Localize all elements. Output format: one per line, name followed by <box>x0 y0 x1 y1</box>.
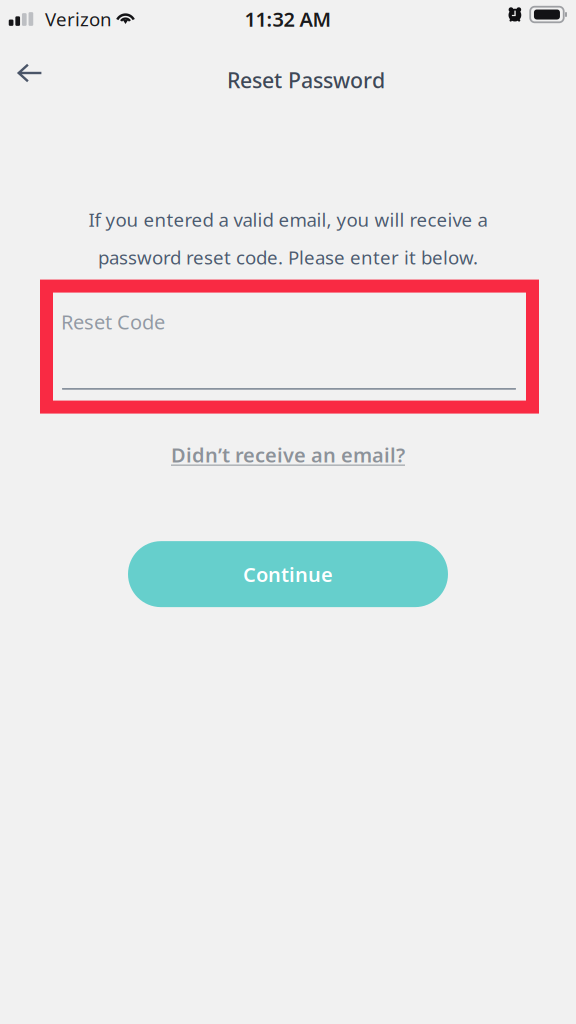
button[interactable]: Reset Code <box>40 280 539 414</box>
staticText: Didn’t receive an email? <box>171 442 405 468</box>
button[interactable]: Didn’t receive an email? <box>161 437 415 473</box>
staticText: Reset Code <box>61 309 165 335</box>
staticText: password reset code. Please enter it bel… <box>98 245 478 270</box>
staticText: If you entered a valid email, you will r… <box>88 207 487 232</box>
staticText: 11:32 AM <box>244 6 331 32</box>
staticText: Reset Password <box>227 66 385 94</box>
button[interactable]: Continue <box>128 541 448 607</box>
button[interactable]: Back <box>0 50 58 96</box>
staticText: Continue <box>243 561 333 587</box>
staticText: Verizon <box>45 7 112 31</box>
